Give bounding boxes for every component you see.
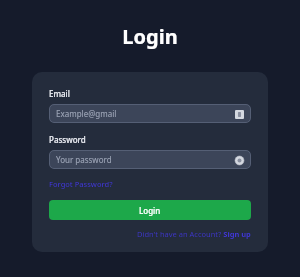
staticText: Password bbox=[49, 134, 86, 145]
button[interactable]: Show password bbox=[234, 155, 244, 165]
staticText: Example@gmail bbox=[56, 108, 234, 119]
staticText: Your password bbox=[56, 154, 234, 165]
button[interactable]: Example@gmail bbox=[49, 104, 251, 123]
staticText: Email bbox=[49, 88, 70, 99]
staticText: Forgot Password? bbox=[49, 179, 113, 189]
staticText: Login bbox=[122, 23, 178, 50]
button[interactable]: Forgot Password? bbox=[49, 179, 113, 189]
button[interactable]: Clear email bbox=[234, 109, 244, 119]
button[interactable]: Didn't have an Account? Sign up bbox=[137, 229, 251, 239]
button[interactable]: Login bbox=[49, 200, 251, 220]
staticText: Login bbox=[139, 205, 161, 216]
button[interactable]: Your password bbox=[49, 150, 251, 169]
staticText: Didn't have an Account? Sign up bbox=[137, 229, 251, 239]
